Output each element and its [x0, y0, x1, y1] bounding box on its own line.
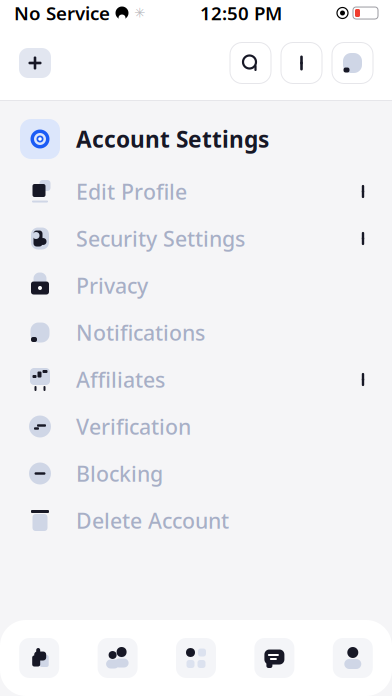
staticText: Delete Account: [76, 506, 229, 535]
button[interactable]: Delete Account: [0, 497, 392, 544]
button[interactable]: Edit Profile: [0, 168, 392, 215]
button[interactable]: Security Settings: [0, 215, 392, 262]
button[interactable]: Search: [230, 42, 271, 83]
button[interactable]: Account Settings: [0, 110, 392, 168]
staticText: Security Settings: [76, 224, 245, 253]
button[interactable]: Profile: [314, 630, 392, 686]
staticText: Privacy: [76, 271, 148, 300]
staticText: Verification: [76, 412, 191, 441]
button[interactable]: Privacy: [0, 262, 392, 309]
staticText: 12:50 PM: [200, 1, 282, 25]
staticText: Edit Profile: [76, 177, 187, 206]
button[interactable]: Verification: [0, 403, 392, 450]
staticText: No Service: [14, 1, 110, 25]
staticText: Affiliates: [76, 365, 165, 394]
staticText: Account Settings: [76, 124, 269, 154]
staticText: ✳: [134, 5, 145, 20]
button[interactable]: Add: [19, 48, 51, 78]
staticText: Blocking: [76, 459, 163, 488]
button[interactable]: Blocking: [0, 450, 392, 497]
button[interactable]: Affiliates: [0, 356, 392, 403]
button[interactable]: Discover: [157, 630, 235, 686]
button[interactable]: Notifications: [0, 309, 392, 356]
button[interactable]: Back: [281, 42, 322, 83]
staticText: Notifications: [76, 318, 205, 347]
button[interactable]: Notifications: [332, 42, 373, 83]
button[interactable]: Messages: [235, 630, 314, 686]
button[interactable]: Feed: [0, 630, 78, 686]
button[interactable]: People: [78, 630, 157, 686]
